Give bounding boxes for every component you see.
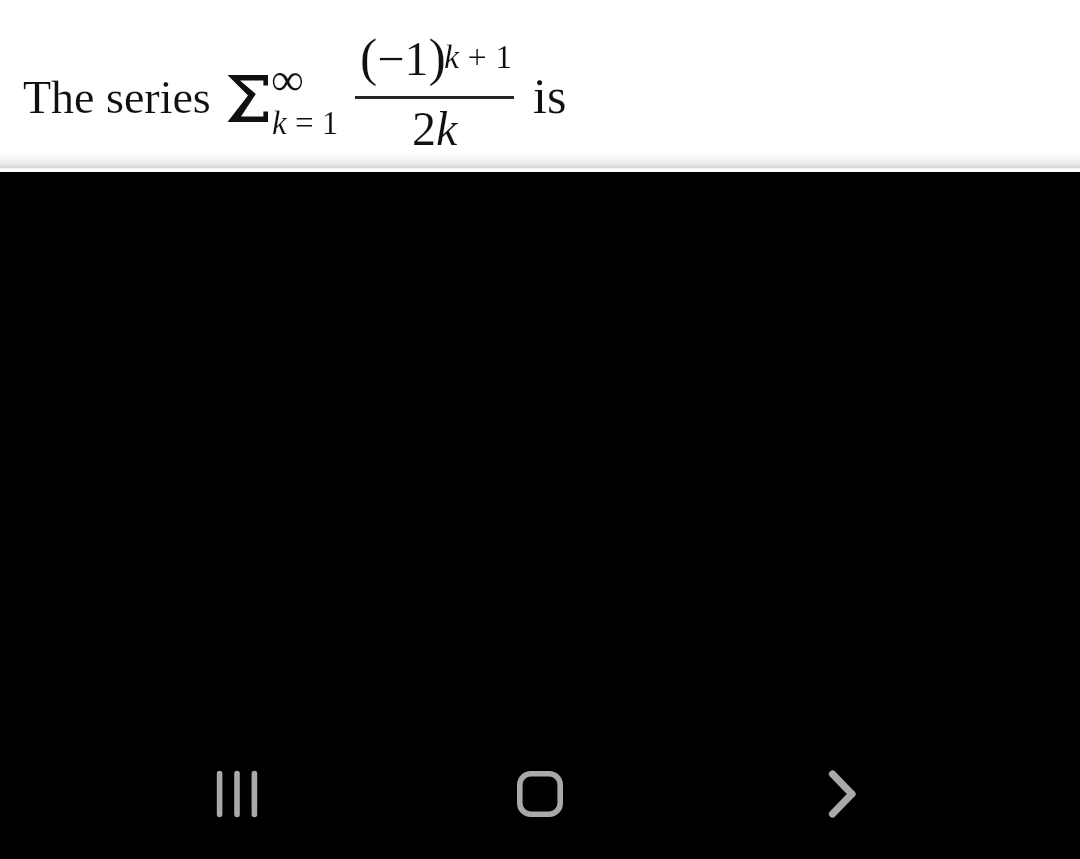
staticText: (−1) <box>360 29 446 87</box>
staticText: k + 1 <box>444 38 513 76</box>
staticText: is <box>533 68 567 123</box>
staticText: The series <box>23 72 211 123</box>
button[interactable]: Back <box>800 752 884 836</box>
button[interactable]: Home <box>498 752 582 836</box>
button[interactable]: Recent apps <box>195 752 279 836</box>
staticText: k = 1 <box>272 105 339 142</box>
staticText: ∞ <box>271 54 304 105</box>
staticText: 2k <box>412 102 458 155</box>
